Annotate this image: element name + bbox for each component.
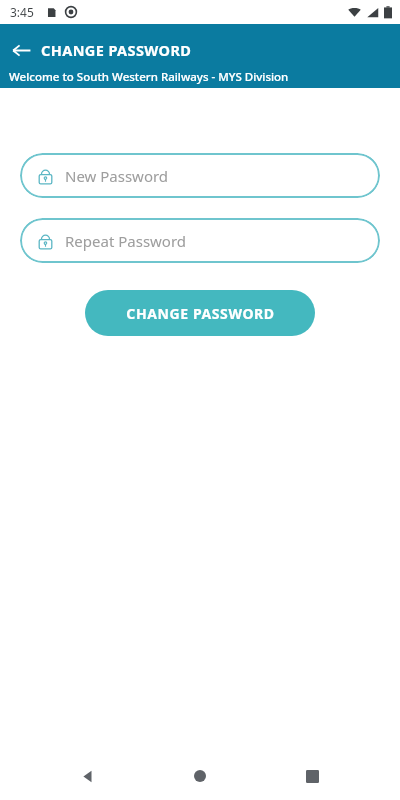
button[interactable]: Repeat Password xyxy=(20,218,380,263)
staticText: 3:45 xyxy=(10,4,34,20)
button[interactable]: CHANGE PASSWORD xyxy=(85,290,315,336)
staticText: Repeat Password xyxy=(65,231,187,251)
staticText: New Password xyxy=(65,166,169,186)
button[interactable]: Back xyxy=(4,33,38,67)
staticText: Welcome to South Western Railways - MYS … xyxy=(9,69,289,85)
button[interactable]: New Password xyxy=(20,153,380,198)
staticText: CHANGE PASSWORD xyxy=(126,304,275,323)
button[interactable]: Recent apps xyxy=(288,752,336,800)
button[interactable]: Back xyxy=(64,752,112,800)
button[interactable]: Home xyxy=(176,752,224,800)
staticText: CHANGE PASSWORD xyxy=(41,40,192,60)
